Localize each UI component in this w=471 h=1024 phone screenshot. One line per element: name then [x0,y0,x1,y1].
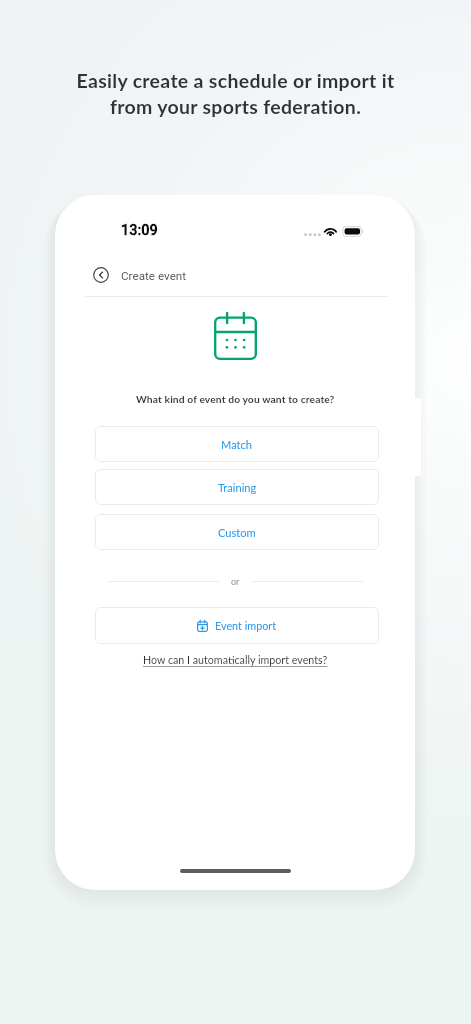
staticText: 13:09 [121,222,158,239]
staticText: Easily create a schedule or import it fr… [20,69,451,118]
staticText: Training [218,481,257,494]
staticText: Event import [215,619,277,632]
button[interactable]: Training [95,469,379,505]
staticText: What kind of event do you want to create… [136,393,335,405]
button[interactable]: Match [95,426,379,462]
staticText: or [231,576,240,587]
staticText: Create event [121,269,187,283]
staticText: Match [221,438,253,451]
button[interactable]: Back [89,263,113,287]
button[interactable]: How can I automatically import events? [143,653,328,666]
button[interactable]: Custom [95,514,379,550]
button[interactable]: Event import [95,607,379,644]
staticText: Custom [218,526,256,539]
